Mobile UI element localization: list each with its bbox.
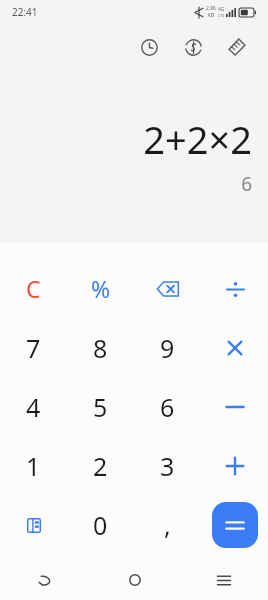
staticText: 2 <box>93 449 108 483</box>
button[interactable]: 2 <box>67 436 134 495</box>
button[interactable]: Home <box>90 560 179 600</box>
button[interactable]: Scientific mode <box>0 495 67 554</box>
staticText: 9 <box>160 331 175 365</box>
button[interactable]: 8 <box>67 318 134 377</box>
staticText: 0 <box>93 508 108 542</box>
staticText: 2+2×2 <box>143 113 252 165</box>
button[interactable]: 5 <box>67 377 134 436</box>
staticText: LTE <box>218 13 225 18</box>
button[interactable]: Equals <box>212 502 258 548</box>
other: Plus <box>218 449 252 483</box>
button[interactable]: Divide <box>201 259 268 318</box>
button[interactable]: Back <box>0 560 90 600</box>
button[interactable]: 9 <box>134 318 201 377</box>
button[interactable]: 1 <box>0 436 67 495</box>
other: Multiply <box>218 331 252 365</box>
button[interactable]: Backspace <box>134 259 201 318</box>
staticText: 1 <box>26 449 41 483</box>
button[interactable]: Equals <box>201 495 268 554</box>
staticText: 6 <box>160 390 175 424</box>
button[interactable]: History <box>132 30 166 64</box>
staticText: 2.86 <box>206 5 216 12</box>
button[interactable]: , <box>134 495 201 554</box>
button[interactable]: Minus <box>201 377 268 436</box>
other: Backspace <box>151 272 185 306</box>
staticText: , <box>164 508 171 542</box>
staticText: % <box>91 273 111 304</box>
button[interactable]: 7 <box>0 318 67 377</box>
staticText: 4 <box>26 390 41 424</box>
button[interactable]: C <box>0 259 67 318</box>
other: Divide <box>218 272 252 306</box>
staticText: 5 <box>93 390 108 424</box>
button[interactable]: 6 <box>134 377 201 436</box>
staticText: 7 <box>26 331 41 365</box>
button[interactable]: Multiply <box>201 318 268 377</box>
button[interactable]: Plus <box>201 436 268 495</box>
button[interactable]: % <box>67 259 134 318</box>
staticText: 8 <box>93 331 108 365</box>
staticText: 22:41 <box>12 5 38 19</box>
button[interactable]: Unit converter <box>220 30 254 64</box>
other: Scientific mode <box>17 508 51 542</box>
button[interactable]: 3 <box>134 436 201 495</box>
button[interactable]: 4 <box>0 377 67 436</box>
other: Minus <box>218 390 252 424</box>
staticText: KB <box>208 12 215 19</box>
button[interactable]: Currency converter <box>176 30 210 64</box>
staticText: 4G <box>218 6 225 13</box>
staticText: 6 <box>241 171 252 197</box>
button[interactable]: 0 <box>67 495 134 554</box>
staticText: 3 <box>160 449 175 483</box>
button[interactable]: Recent apps <box>179 560 268 600</box>
staticText: C <box>26 273 41 304</box>
